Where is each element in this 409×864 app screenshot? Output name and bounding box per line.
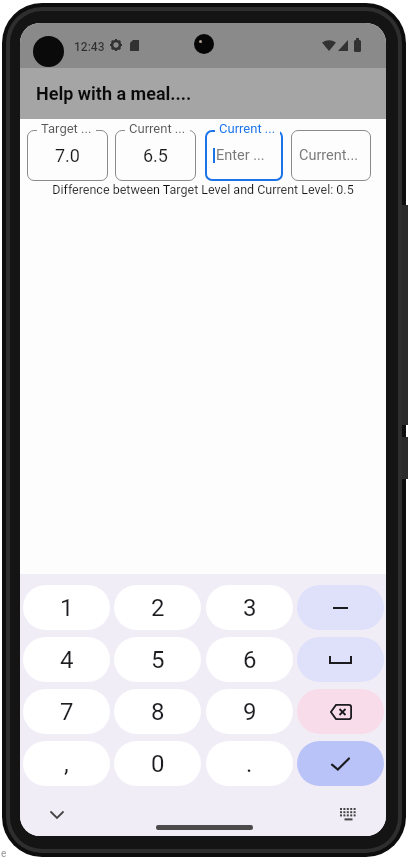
button[interactable]: [297, 741, 384, 786]
staticText: Help with a meal....: [36, 83, 192, 104]
staticText: Target ...: [41, 121, 92, 136]
staticText: Current ...: [219, 121, 276, 136]
button[interactable]: 4: [23, 637, 110, 682]
staticText: 3: [243, 594, 257, 622]
button[interactable]: Current...: [291, 130, 371, 181]
staticText: 8: [151, 698, 165, 726]
button[interactable]: 9: [206, 689, 293, 734]
staticText: 7.0: [55, 145, 80, 166]
staticText: Difference between Target Level and Curr…: [20, 182, 386, 197]
button[interactable]: Enter ...: [205, 130, 283, 181]
staticText: Current...: [299, 147, 359, 164]
button[interactable]: [50, 811, 64, 819]
button[interactable]: 8: [114, 689, 201, 734]
staticText: 6.5: [143, 145, 168, 166]
staticText: e: [1, 848, 7, 860]
staticText: ,: [64, 750, 69, 778]
staticText: 0: [151, 750, 165, 778]
staticText: 5: [151, 646, 165, 674]
staticText: Current ...: [129, 121, 186, 136]
staticText: 9: [243, 698, 257, 726]
button[interactable]: 1: [23, 585, 110, 630]
button[interactable]: [340, 808, 357, 821]
staticText: 1: [60, 594, 74, 622]
button[interactable]: 7: [23, 689, 110, 734]
staticText: 2: [151, 594, 165, 622]
staticText: 6: [243, 646, 257, 674]
button[interactable]: [297, 637, 384, 682]
staticText: 7: [60, 698, 74, 726]
staticText: Enter ...: [216, 147, 265, 164]
button[interactable]: 6: [206, 637, 293, 682]
button[interactable]: 7.0: [27, 130, 108, 181]
button[interactable]: 0: [114, 741, 201, 786]
staticText: 4: [60, 646, 74, 674]
button[interactable]: .: [206, 741, 293, 786]
button[interactable]: 2: [114, 585, 201, 630]
button[interactable]: 3: [206, 585, 293, 630]
button[interactable]: 5: [114, 637, 201, 682]
button[interactable]: [297, 689, 384, 734]
button[interactable]: Help with a meal....: [20, 68, 386, 119]
staticText: 12:43: [74, 40, 105, 54]
button[interactable]: ,: [23, 741, 110, 786]
button[interactable]: [297, 585, 384, 630]
button[interactable]: 6.5: [115, 130, 196, 181]
staticText: .: [246, 750, 253, 778]
